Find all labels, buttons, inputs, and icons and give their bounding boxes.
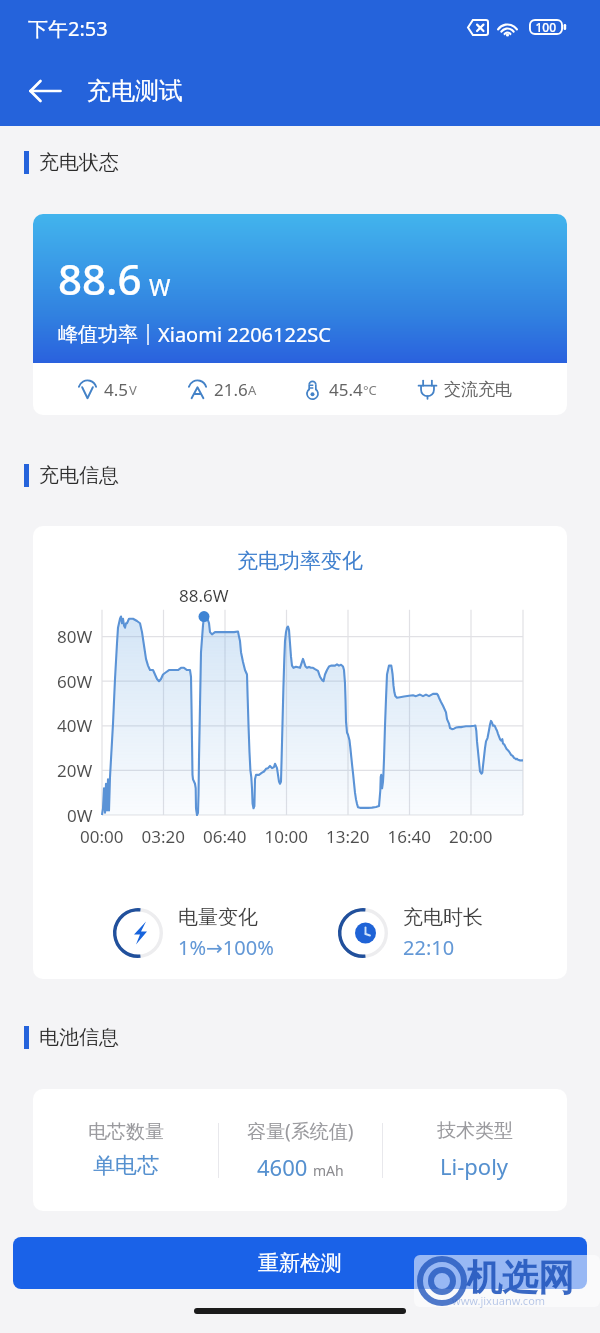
staticText: mAh bbox=[313, 1161, 344, 1180]
staticText: 45.4 bbox=[329, 378, 363, 401]
button[interactable]: 重新检测 bbox=[13, 1237, 587, 1289]
staticText: °C bbox=[363, 381, 377, 399]
staticText: 1%→100% bbox=[178, 934, 274, 961]
staticText: W bbox=[149, 271, 171, 302]
staticText: 充电时长 bbox=[403, 905, 483, 930]
staticText: 下午2:53 bbox=[28, 15, 108, 42]
staticText: 电芯数量 bbox=[88, 1120, 164, 1144]
button[interactable]: 返回 bbox=[16, 62, 74, 120]
staticText: 4600 bbox=[257, 1152, 308, 1182]
staticText: 充电状态 bbox=[39, 150, 119, 175]
staticText: 容量(系统值) bbox=[247, 1118, 354, 1144]
staticText: 电量变化 bbox=[178, 905, 258, 930]
staticText: Xiaomi 2206122SC bbox=[158, 321, 331, 348]
staticText: 单电芯 bbox=[93, 1152, 159, 1180]
staticText: 电池信息 bbox=[39, 1025, 119, 1050]
staticText: 充电信息 bbox=[39, 463, 119, 488]
staticText: 峰值功率 bbox=[58, 322, 138, 347]
staticText: Li-poly bbox=[440, 1151, 509, 1181]
staticText: A bbox=[248, 381, 257, 399]
staticText: 22:10 bbox=[403, 934, 455, 961]
staticText: 交流充电 bbox=[444, 379, 512, 400]
staticText: V bbox=[129, 381, 137, 399]
staticText: 88.6 bbox=[58, 250, 142, 307]
staticText: 重新检测 bbox=[258, 1250, 342, 1276]
staticText: 充电功率变化 bbox=[33, 548, 567, 574]
staticText: 技术类型 bbox=[437, 1119, 513, 1143]
staticText: 4.5 bbox=[104, 378, 129, 401]
staticText: 充电测试 bbox=[87, 76, 183, 106]
staticText: 21.6 bbox=[214, 378, 248, 401]
